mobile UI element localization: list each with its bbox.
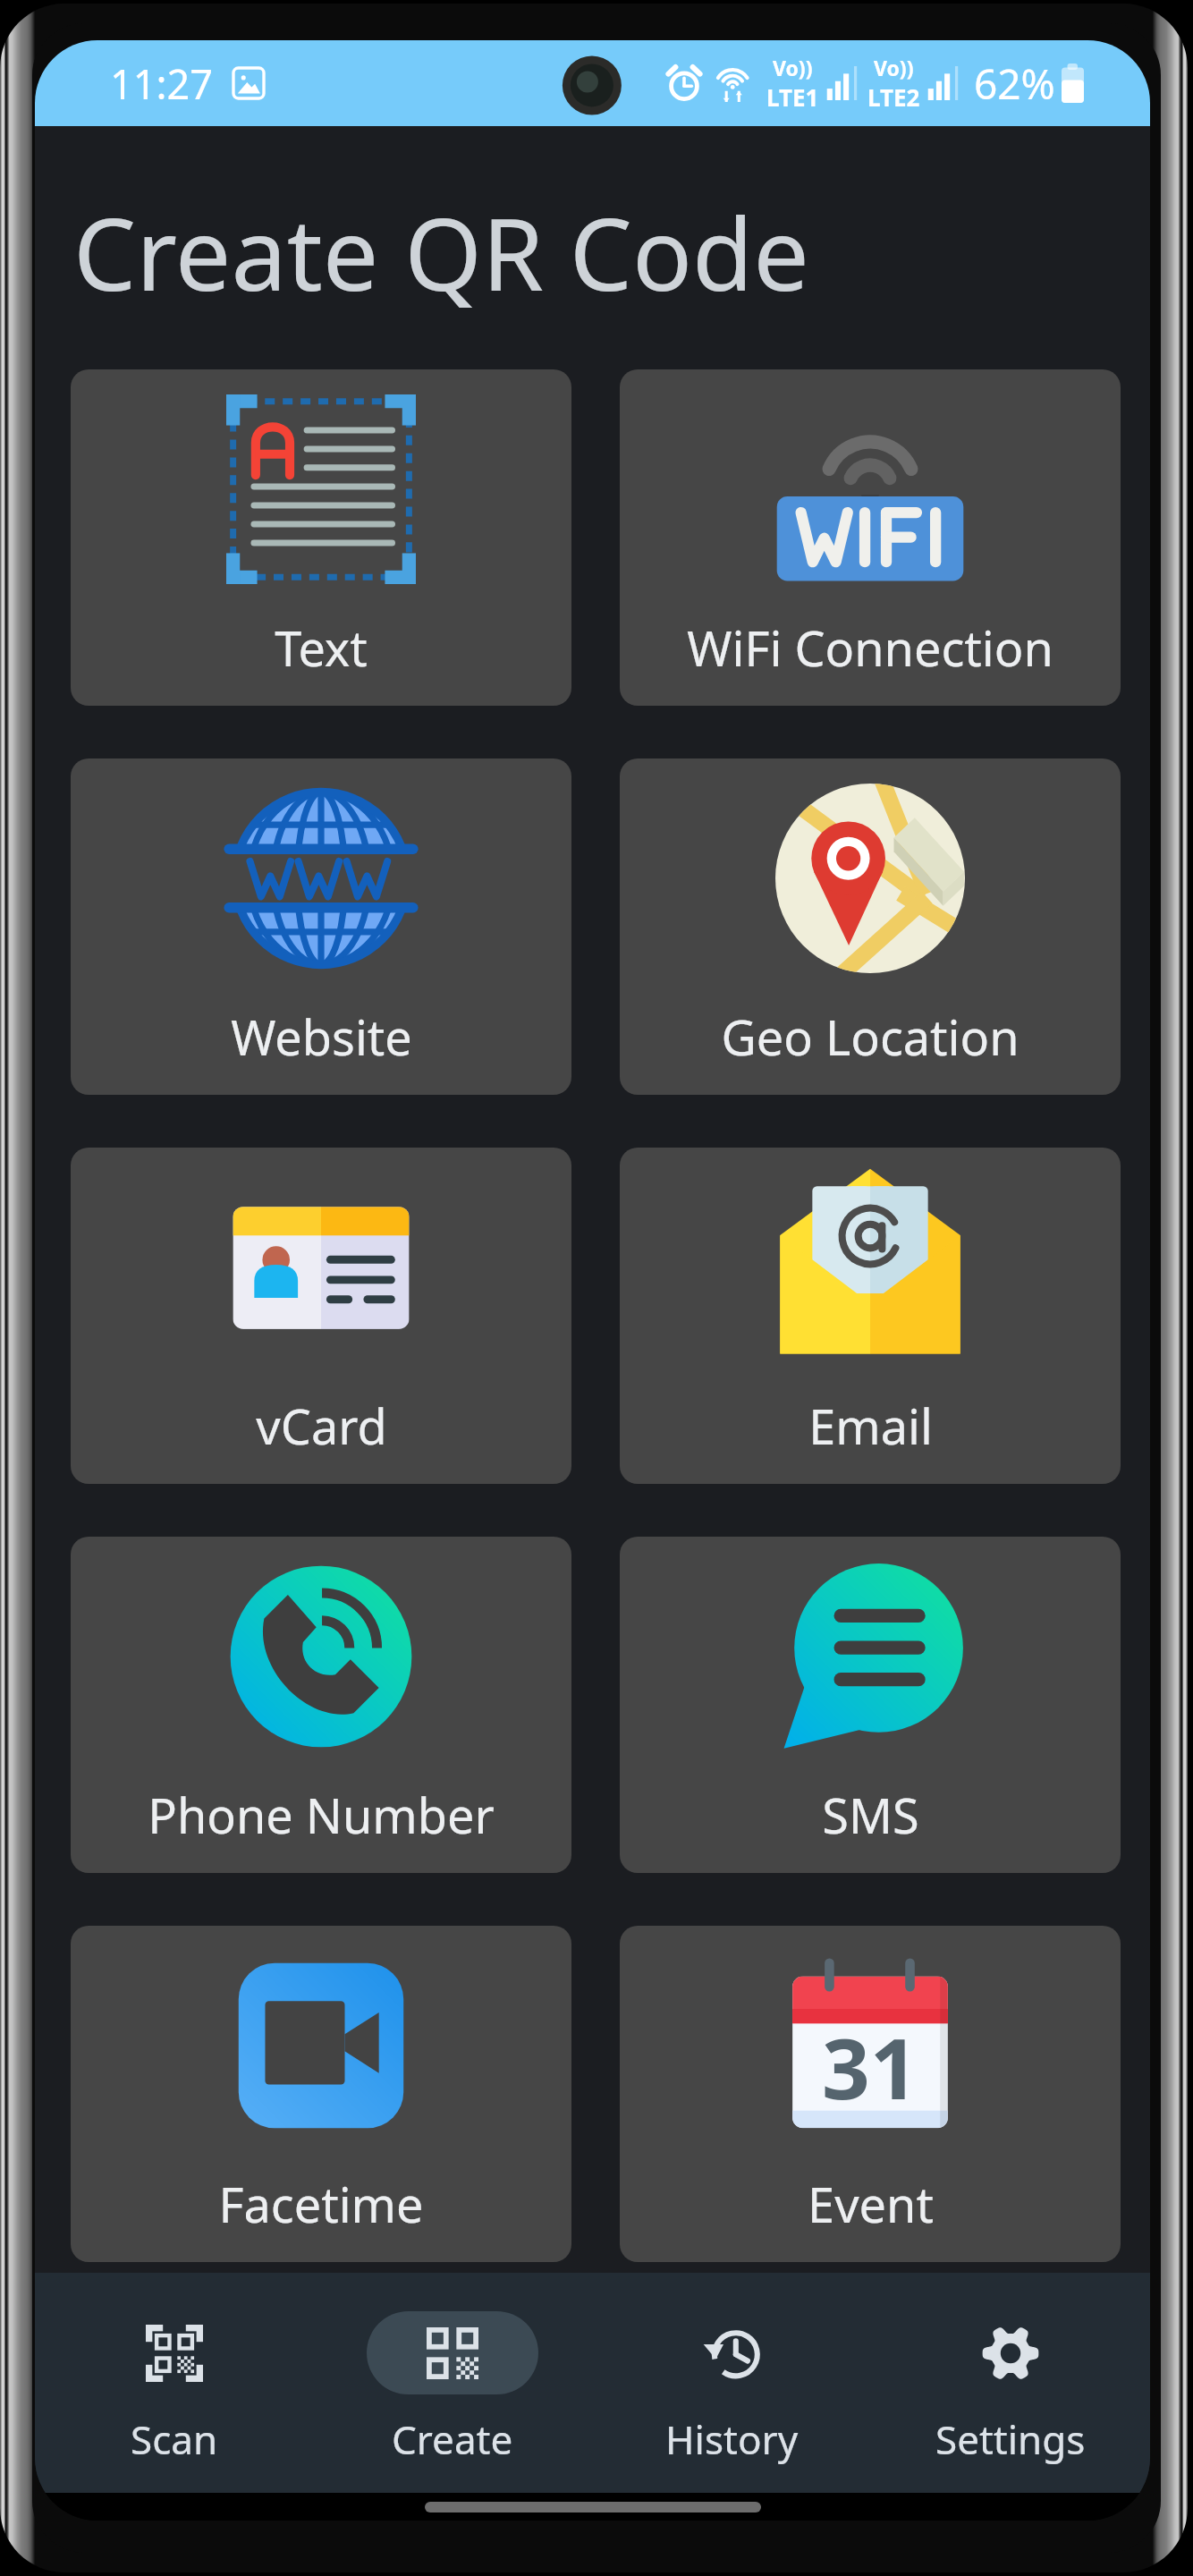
button[interactable]: History xyxy=(592,2273,871,2493)
button[interactable]: Facetime xyxy=(71,1926,571,2262)
staticText: Vo)) xyxy=(874,54,914,81)
button[interactable]: WiFi Connection xyxy=(620,369,1121,706)
button[interactable]: Email xyxy=(620,1148,1121,1484)
staticText: Vo)) xyxy=(773,54,813,81)
staticText: Email xyxy=(808,1393,933,1459)
button[interactable]: 31 xyxy=(620,1926,1121,2262)
button[interactable]: SMS xyxy=(620,1537,1121,1873)
button[interactable]: Scan xyxy=(35,2273,313,2493)
staticText: 11:27 xyxy=(110,56,214,111)
staticText: Website xyxy=(231,1004,412,1070)
staticText: Settings xyxy=(935,2412,1086,2466)
staticText: Phone Number xyxy=(148,1782,495,1848)
button[interactable]: Create xyxy=(313,2273,592,2493)
staticText: 31 xyxy=(822,2010,918,2124)
staticText: Geo Location xyxy=(721,1004,1020,1070)
staticText: LTE1 xyxy=(766,81,819,113)
button[interactable]: Settings xyxy=(871,2273,1150,2493)
staticText: Event xyxy=(808,2171,934,2237)
staticText: Scan xyxy=(131,2412,218,2466)
staticText: Facetime xyxy=(218,2171,424,2237)
button[interactable]: Geo Location xyxy=(620,758,1121,1095)
staticText: WiFi Connection xyxy=(687,614,1053,681)
staticText: History xyxy=(665,2412,799,2466)
button[interactable]: Text xyxy=(71,369,571,706)
staticText: 62% xyxy=(974,55,1055,112)
staticText: vCard xyxy=(256,1393,387,1459)
button[interactable]: Website xyxy=(71,758,571,1095)
button[interactable]: vCard xyxy=(71,1148,571,1484)
staticText: Text xyxy=(275,614,368,681)
staticText: LTE2 xyxy=(867,81,920,113)
staticText: Create xyxy=(392,2412,513,2466)
button[interactable]: Phone Number xyxy=(71,1537,571,1873)
staticText: Create QR Code xyxy=(73,184,809,319)
staticText: SMS xyxy=(822,1782,919,1848)
